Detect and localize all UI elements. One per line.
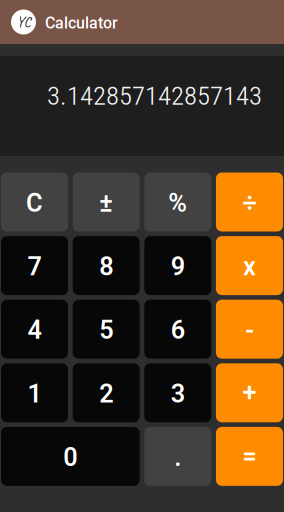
staticText: Calculator	[45, 14, 118, 32]
staticText: 4	[27, 315, 41, 345]
button[interactable]: Divide	[216, 172, 283, 231]
button[interactable]: Multiply	[216, 236, 283, 295]
staticText: 1	[27, 379, 41, 409]
button[interactable]: Minus	[216, 300, 283, 359]
staticText: -	[245, 316, 254, 346]
button[interactable]: Clear	[1, 172, 68, 231]
staticText: 3.142857142857143	[47, 80, 262, 111]
staticText: %	[168, 188, 187, 218]
button[interactable]: 0	[1, 427, 140, 486]
button[interactable]: 2	[73, 363, 140, 422]
staticText: x	[243, 252, 256, 281]
staticText: ±	[99, 188, 113, 218]
button[interactable]: Decimal point	[144, 427, 211, 486]
button[interactable]: Percent	[144, 172, 211, 231]
button[interactable]: 1	[1, 363, 68, 422]
staticText: C	[26, 188, 43, 218]
button[interactable]: 5	[73, 300, 140, 359]
button[interactable]: 3	[144, 363, 211, 422]
staticText: 2	[99, 379, 113, 409]
button[interactable]: 9	[144, 236, 211, 295]
button[interactable]: Plus	[216, 363, 283, 422]
button[interactable]: Equals	[216, 427, 283, 486]
staticText: ÷	[242, 188, 256, 218]
button[interactable]: 4	[1, 300, 68, 359]
button[interactable]: 8	[73, 236, 140, 295]
staticText: .	[174, 443, 181, 472]
staticText: =	[242, 441, 256, 471]
staticText: 6	[171, 315, 185, 345]
staticText: 7	[27, 252, 41, 281]
staticText: 9	[171, 252, 185, 281]
staticText: 5	[99, 315, 113, 345]
staticText: 3	[171, 379, 185, 409]
staticText: 0	[63, 443, 77, 472]
staticText: YC	[16, 13, 30, 31]
button[interactable]: 6	[144, 300, 211, 359]
staticText: 8	[99, 252, 113, 281]
button[interactable]: Plus minus	[73, 172, 140, 231]
button[interactable]: 7	[1, 236, 68, 295]
staticText: +	[242, 377, 256, 407]
